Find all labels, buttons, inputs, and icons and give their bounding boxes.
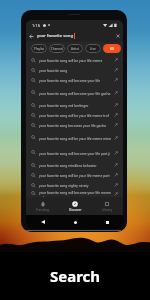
button[interactable]: your favorite song will be your life mem…	[26, 55, 123, 65]
button[interactable]: your favorite song will become your life	[26, 75, 123, 85]
button[interactable]: Discover	[59, 197, 91, 215]
other: Insert suggestion	[113, 102, 119, 108]
button[interactable]: your favorite song eighty ninety	[26, 180, 123, 190]
button[interactable]: Back	[26, 30, 37, 42]
other: Insert suggestion	[113, 182, 119, 188]
staticText: your favorite song will be your life mem…	[39, 58, 111, 62]
staticText: your favorite song will become your life…	[39, 190, 111, 197]
button[interactable]: your favorite song will be your life mem…	[26, 130, 123, 145]
staticText: Search	[50, 266, 101, 286]
staticText: your favorite song eighty ninety	[39, 183, 111, 187]
button[interactable]: your favorite song erd berlinger	[26, 100, 123, 110]
button[interactable]: Playlist	[31, 44, 47, 53]
button[interactable]: Clear search	[112, 30, 123, 42]
staticText: Library	[102, 208, 113, 212]
staticText: your favorite song will become your life…	[39, 91, 111, 95]
other: Insert suggestion	[113, 162, 119, 168]
staticText: your favorite song	[39, 68, 111, 72]
button[interactable]: your favorite song will become your life…	[26, 145, 123, 160]
staticText: Artist	[71, 47, 79, 51]
button[interactable]: your favorite song will become your life…	[26, 85, 123, 100]
button[interactable]: Artist	[67, 44, 83, 53]
other: Insert suggestion	[113, 191, 119, 197]
button[interactable]: your favorite song mindless behavior	[26, 160, 123, 170]
other: Insert suggestion	[113, 90, 119, 96]
staticText: your favorite song erd berlinger	[39, 103, 111, 107]
staticText: 1:16	[32, 23, 40, 28]
staticText: your favorite song mindless behavior	[39, 163, 111, 167]
other: Insert suggestion	[113, 135, 119, 141]
button[interactable]: Channel	[49, 44, 65, 53]
other: Insert suggestion	[113, 112, 119, 118]
staticText: your favorite song	[37, 33, 74, 39]
staticText: Playlist	[34, 47, 45, 51]
other: Insert suggestion	[113, 57, 119, 63]
button[interactable]: Back	[41, 220, 45, 224]
button[interactable]: your favorite song will become your life…	[26, 190, 123, 197]
button[interactable]: All	[103, 44, 121, 53]
staticText: Live	[90, 47, 96, 51]
staticText: your favorite song will be your life mem…	[39, 173, 111, 177]
staticText: your favorite song will be your life mem…	[39, 113, 111, 117]
other: Insert suggestion	[113, 67, 119, 73]
other: Insert suggestion	[113, 122, 119, 128]
button[interactable]: your favorite song will be your life mem…	[26, 170, 123, 180]
staticText: Discover	[69, 208, 82, 212]
button[interactable]: Live	[85, 44, 101, 53]
staticText: your favorite song will be your life mem…	[39, 136, 111, 140]
staticText: All	[110, 47, 114, 51]
other: Insert suggestion	[113, 150, 119, 156]
staticText: Trending	[36, 208, 49, 212]
other: Insert suggestion	[113, 172, 119, 178]
button[interactable]: your favorite song	[26, 65, 123, 75]
button[interactable]: Trending	[26, 197, 59, 215]
button[interactable]: your favorite song becomes your life gac…	[26, 120, 123, 130]
staticText: your favorite song becomes your life gac…	[39, 123, 111, 127]
button[interactable]: your favorite song will be your life mem…	[26, 110, 123, 120]
staticText: Channel	[51, 47, 63, 51]
button[interactable]: Home	[74, 221, 77, 224]
staticText: your favorite song will become your life	[39, 78, 111, 82]
button[interactable]: Library	[91, 197, 123, 215]
staticText: your favorite song will become your life…	[39, 151, 111, 155]
other: Insert suggestion	[113, 77, 119, 83]
